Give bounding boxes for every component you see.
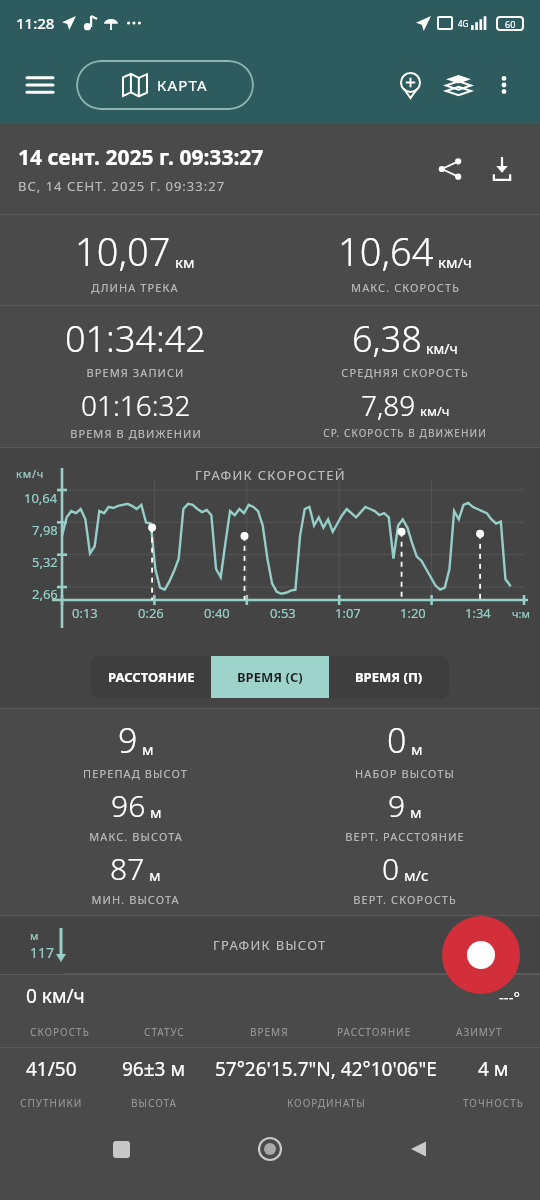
staticText: 0 xyxy=(382,848,400,889)
staticText: АЗИМУТ xyxy=(456,1025,503,1039)
staticText: МАКС. СКОРОСТЬ xyxy=(351,280,460,295)
button[interactable]: Back xyxy=(391,1121,447,1177)
button[interactable]: Add waypoint xyxy=(386,61,434,109)
staticText: м/с xyxy=(404,865,429,885)
staticText: РАССТОЯНИЕ xyxy=(108,668,195,686)
staticText: 01:16:32 xyxy=(81,386,191,424)
button[interactable]: РАССТОЯНИЕ xyxy=(91,656,211,698)
staticText: 9 xyxy=(118,717,138,763)
staticText: ПЕРЕПАД ВЫСОТ xyxy=(83,766,188,781)
staticText: ВРЕМЯ (П) xyxy=(355,668,423,686)
button[interactable]: КАРТА xyxy=(76,60,254,110)
staticText: 0 xyxy=(387,717,407,763)
button[interactable]: Share xyxy=(424,143,476,195)
staticText: м xyxy=(149,865,161,885)
staticText: 87 xyxy=(110,848,145,889)
staticText: 117 xyxy=(30,943,55,962)
staticText: 1:20 xyxy=(400,604,426,622)
staticText: НАБОР ВЫСОТЫ xyxy=(355,766,455,781)
staticText: СТАТУС xyxy=(144,1025,185,1039)
staticText: 10,07 xyxy=(75,225,171,277)
staticText: 6,38 xyxy=(352,314,422,363)
staticText: м xyxy=(30,928,39,943)
staticText: 14 сент. 2025 г. 09:33:27 xyxy=(18,143,264,172)
staticText: ВРЕМЯ ЗАПИСИ xyxy=(86,365,185,380)
staticText: ч:м xyxy=(512,606,530,621)
staticText: СКОРОСТЬ xyxy=(30,1025,90,1039)
staticText: 1:34 xyxy=(465,604,491,622)
button[interactable]: Menu xyxy=(14,59,66,111)
staticText: КООРДИНАТЫ xyxy=(287,1096,366,1110)
staticText: 0:53 xyxy=(270,604,296,622)
staticText: 60 xyxy=(505,18,516,30)
staticText: СПУТНИКИ xyxy=(20,1096,83,1110)
button[interactable]: Home xyxy=(242,1121,298,1177)
staticText: ДЛИНА ТРЕКА xyxy=(91,280,179,295)
staticText: 96 xyxy=(111,785,146,826)
staticText: ТОЧНОСТЬ xyxy=(463,1096,524,1110)
staticText: м xyxy=(410,802,422,822)
staticText: 7,89 xyxy=(361,386,416,424)
staticText: ВЫСОТА xyxy=(131,1096,177,1110)
button[interactable]: Recents xyxy=(93,1121,149,1177)
staticText: 2,66 xyxy=(32,585,58,603)
staticText: СРЕДНЯЯ СКОРОСТЬ xyxy=(341,365,469,380)
staticText: 9 xyxy=(388,785,406,826)
staticText: 4 м xyxy=(478,1056,509,1082)
button[interactable]: ВРЕМЯ (П) xyxy=(329,656,449,698)
staticText: ГРАФИК СКОРОСТЕЙ xyxy=(195,466,346,484)
staticText: ВЕРТ. РАССТОЯНИЕ xyxy=(345,829,465,844)
staticText: 7,98 xyxy=(32,521,58,539)
staticText: 0:26 xyxy=(138,604,164,622)
staticText: м xyxy=(411,739,423,759)
staticText: РАССТОЯНИЕ xyxy=(337,1025,412,1039)
staticText: 0:40 xyxy=(204,604,230,622)
staticText: 41/50 xyxy=(26,1056,77,1082)
staticText: ВРЕМЯ xyxy=(250,1025,289,1039)
staticText: ГРАФИК ВЫСОТ xyxy=(213,936,327,954)
staticText: км/ч xyxy=(426,339,458,358)
staticText: 0 км/ч xyxy=(26,983,85,1009)
staticText: СР. СКОРОСТЬ В ДВИЖЕНИИ xyxy=(323,426,487,440)
staticText: ВРЕМЯ (С) xyxy=(237,668,303,686)
staticText: МАКС. ВЫСОТА xyxy=(89,829,183,844)
staticText: ВЕРТ. СКОРОСТЬ xyxy=(353,892,457,907)
button[interactable]: More options xyxy=(482,63,526,107)
button[interactable]: ВРЕМЯ (С) xyxy=(211,656,329,698)
button[interactable]: Layers xyxy=(434,61,482,109)
button[interactable]: Record xyxy=(442,916,520,994)
staticText: 5,32 xyxy=(32,553,58,571)
staticText: ВС, 14 СЕНТ. 2025 Г. 09:33:27 xyxy=(18,177,226,195)
staticText: м xyxy=(142,739,154,759)
staticText: 96±3 м xyxy=(122,1056,186,1082)
staticText: км xyxy=(175,252,195,272)
staticText: КАРТА xyxy=(157,75,208,95)
staticText: 57°26'15.7"N, 42°10'06"E xyxy=(215,1056,437,1082)
staticText: 0:13 xyxy=(72,604,98,622)
staticText: 11:28 xyxy=(16,13,55,33)
staticText: км/ч xyxy=(420,402,450,420)
staticText: 01:34:42 xyxy=(65,314,206,363)
staticText: м xyxy=(150,802,162,822)
staticText: 1:07 xyxy=(335,604,361,622)
staticText: 10,64 xyxy=(338,225,434,277)
button[interactable]: Download xyxy=(476,143,528,195)
staticText: км/ч xyxy=(16,466,45,481)
staticText: ВРЕМЯ В ДВИЖЕНИИ xyxy=(70,426,202,441)
staticText: 10,64 xyxy=(24,489,58,507)
staticText: ---° xyxy=(499,987,520,1007)
staticText: МИН. ВЫСОТА xyxy=(91,892,180,907)
staticText: км/ч xyxy=(438,252,472,272)
staticText: 4G xyxy=(458,18,469,29)
